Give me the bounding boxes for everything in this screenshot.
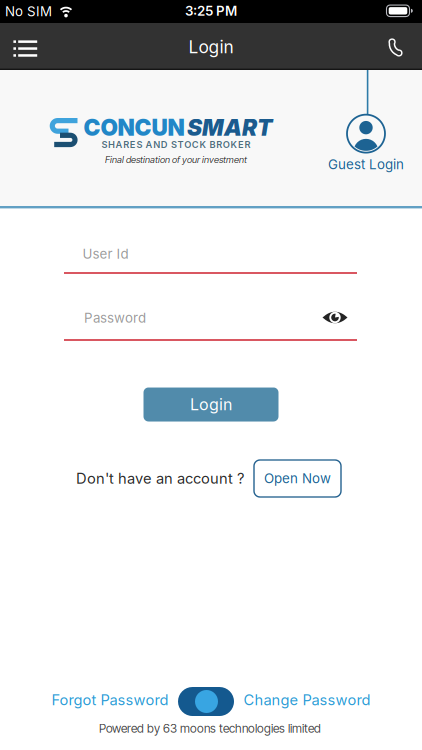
staticText: Change Password [243, 691, 370, 709]
staticText: SHARES AND STOCK BROKER [101, 139, 251, 150]
staticText: 3:25 PM [185, 3, 237, 19]
button[interactable]: Show password [318, 305, 352, 329]
button[interactable]: Toggle Forgot/Change Password [178, 687, 234, 716]
staticText: Guest Login [328, 157, 404, 172]
staticText: Don't have an account ? [76, 470, 244, 487]
staticText: User Id [82, 246, 128, 262]
button[interactable]: Guest Login [328, 115, 404, 172]
button[interactable]: Open Now [254, 460, 341, 497]
staticText: No SIM [5, 4, 52, 19]
staticText: CONCUN [83, 114, 184, 141]
button[interactable]: Forgot Password [51, 691, 168, 709]
staticText: SMART [187, 114, 272, 141]
staticText: Login [190, 395, 232, 414]
staticText: Final destination of your investment [105, 154, 247, 165]
staticText: Forgot Password [51, 691, 168, 709]
staticText: Password [84, 310, 146, 326]
staticText: Login [188, 37, 233, 57]
button[interactable]: Change Password [243, 691, 370, 709]
button[interactable]: Login [143, 387, 278, 421]
button[interactable]: Call [379, 31, 415, 65]
staticText: Powered by 63 moons technologies limited [99, 721, 321, 736]
staticText: Open Now [264, 471, 331, 486]
button[interactable]: Menu [5, 32, 45, 65]
